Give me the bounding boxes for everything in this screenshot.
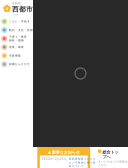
staticText: 高病原性鳥インフル: [69, 157, 96, 161]
staticText: 子育て・教育・: [9, 35, 30, 38]
staticText: 宮崎県: [12, 2, 21, 5]
staticText: 組織からさがす: [9, 63, 30, 66]
button[interactable]: 市政情報: [0, 51, 32, 60]
button[interactable]: 2024年12月25日: [40, 155, 88, 168]
button[interactable]: くらし・手続き: [0, 17, 32, 26]
staticText: 福祉・健康: [9, 39, 24, 42]
staticText: 観光・文化・芸術: [9, 28, 33, 32]
button[interactable]: 総合トッ: [94, 147, 128, 168]
staticText: プへ: [103, 154, 111, 159]
staticText: 市政情報: [9, 54, 21, 57]
staticText: 2024年12月25日: [42, 157, 67, 161]
button[interactable]: 宮崎県: [0, 0, 32, 17]
staticText: SAITO CITY: [12, 14, 19, 15]
button[interactable]: 組織からさがす: [0, 60, 32, 68]
button[interactable]: 観光・文化・芸術: [0, 26, 32, 34]
staticText: エンザ発生に伴う対: [69, 161, 96, 164]
staticText: 重要なお知らせ: [52, 150, 80, 155]
staticText: 西都市: [12, 5, 33, 13]
staticText: 総合トッ: [103, 150, 119, 154]
staticText: 産業・事業: [9, 45, 24, 49]
button[interactable]: 子育て・教育・: [0, 34, 32, 43]
staticText: 応について: [69, 164, 84, 168]
staticText: さいとのまちの情報はこちら: [98, 160, 128, 167]
staticText: くらし・手続き: [9, 20, 30, 23]
button[interactable]: 産業・事業: [0, 43, 32, 51]
